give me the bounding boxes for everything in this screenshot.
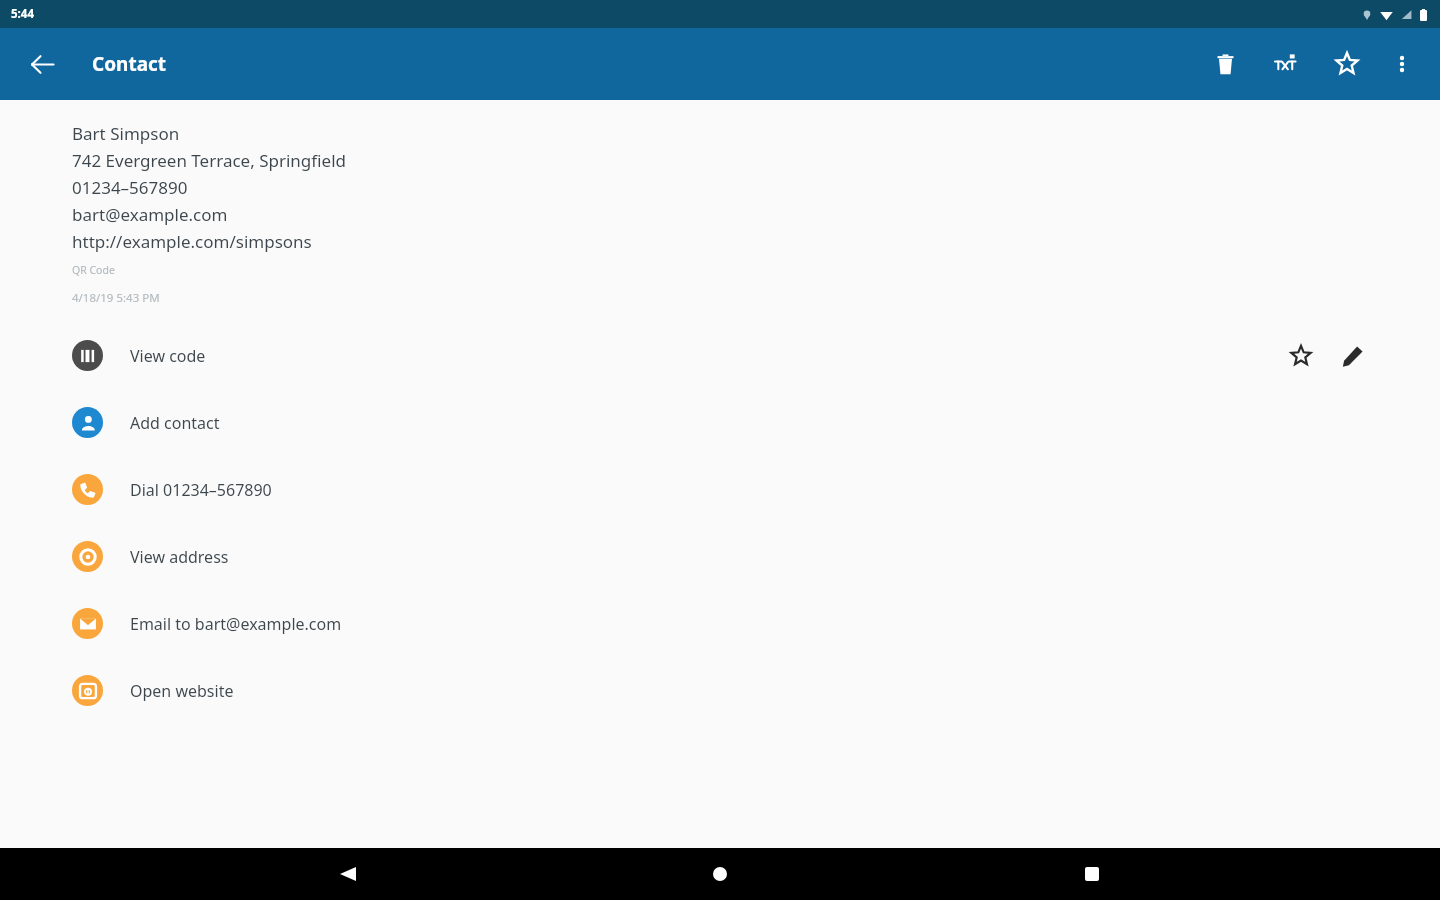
staticText: Dial 01234–567890 bbox=[130, 479, 272, 501]
staticText: View address bbox=[130, 546, 229, 568]
button[interactable]: Back bbox=[324, 850, 372, 898]
staticText: View code bbox=[130, 345, 206, 367]
button[interactable]: Back bbox=[20, 42, 64, 86]
button[interactable]: Delete bbox=[1203, 42, 1247, 86]
staticText: Bart Simpson bbox=[72, 122, 180, 145]
button[interactable]: Add contact bbox=[0, 389, 1440, 456]
button[interactable]: Recents bbox=[1068, 850, 1116, 898]
button[interactable]: Favorite bbox=[1325, 42, 1369, 86]
staticText: 4/18/19 5:43 PM bbox=[72, 290, 160, 306]
staticText: Open website bbox=[130, 680, 234, 702]
staticText: 01234–567890 bbox=[72, 176, 188, 199]
button[interactable]: Edit bbox=[1330, 334, 1374, 378]
button[interactable]: Email to bart@example.com bbox=[0, 590, 1440, 657]
button[interactable]: Favorite bbox=[1279, 334, 1323, 378]
staticText: bart@example.com bbox=[72, 203, 228, 226]
button[interactable]: View address bbox=[0, 523, 1440, 590]
staticText: QR Code bbox=[72, 263, 115, 277]
button[interactable]: Home bbox=[696, 850, 744, 898]
staticText: 5:44 bbox=[11, 6, 34, 22]
staticText: Email to bart@example.com bbox=[130, 613, 342, 635]
button[interactable]: More options bbox=[1380, 42, 1424, 86]
button[interactable]: Dial 01234–567890 bbox=[0, 456, 1440, 523]
staticText: 742 Evergreen Terrace, Springfield bbox=[72, 149, 346, 172]
button[interactable]: Text format bbox=[1264, 42, 1308, 86]
staticText: Add contact bbox=[130, 412, 220, 434]
button[interactable]: View code bbox=[0, 322, 1440, 389]
staticText: Contact bbox=[92, 51, 167, 77]
staticText: http://example.com/simpsons bbox=[72, 230, 312, 253]
button[interactable]: Open website bbox=[0, 657, 1440, 724]
